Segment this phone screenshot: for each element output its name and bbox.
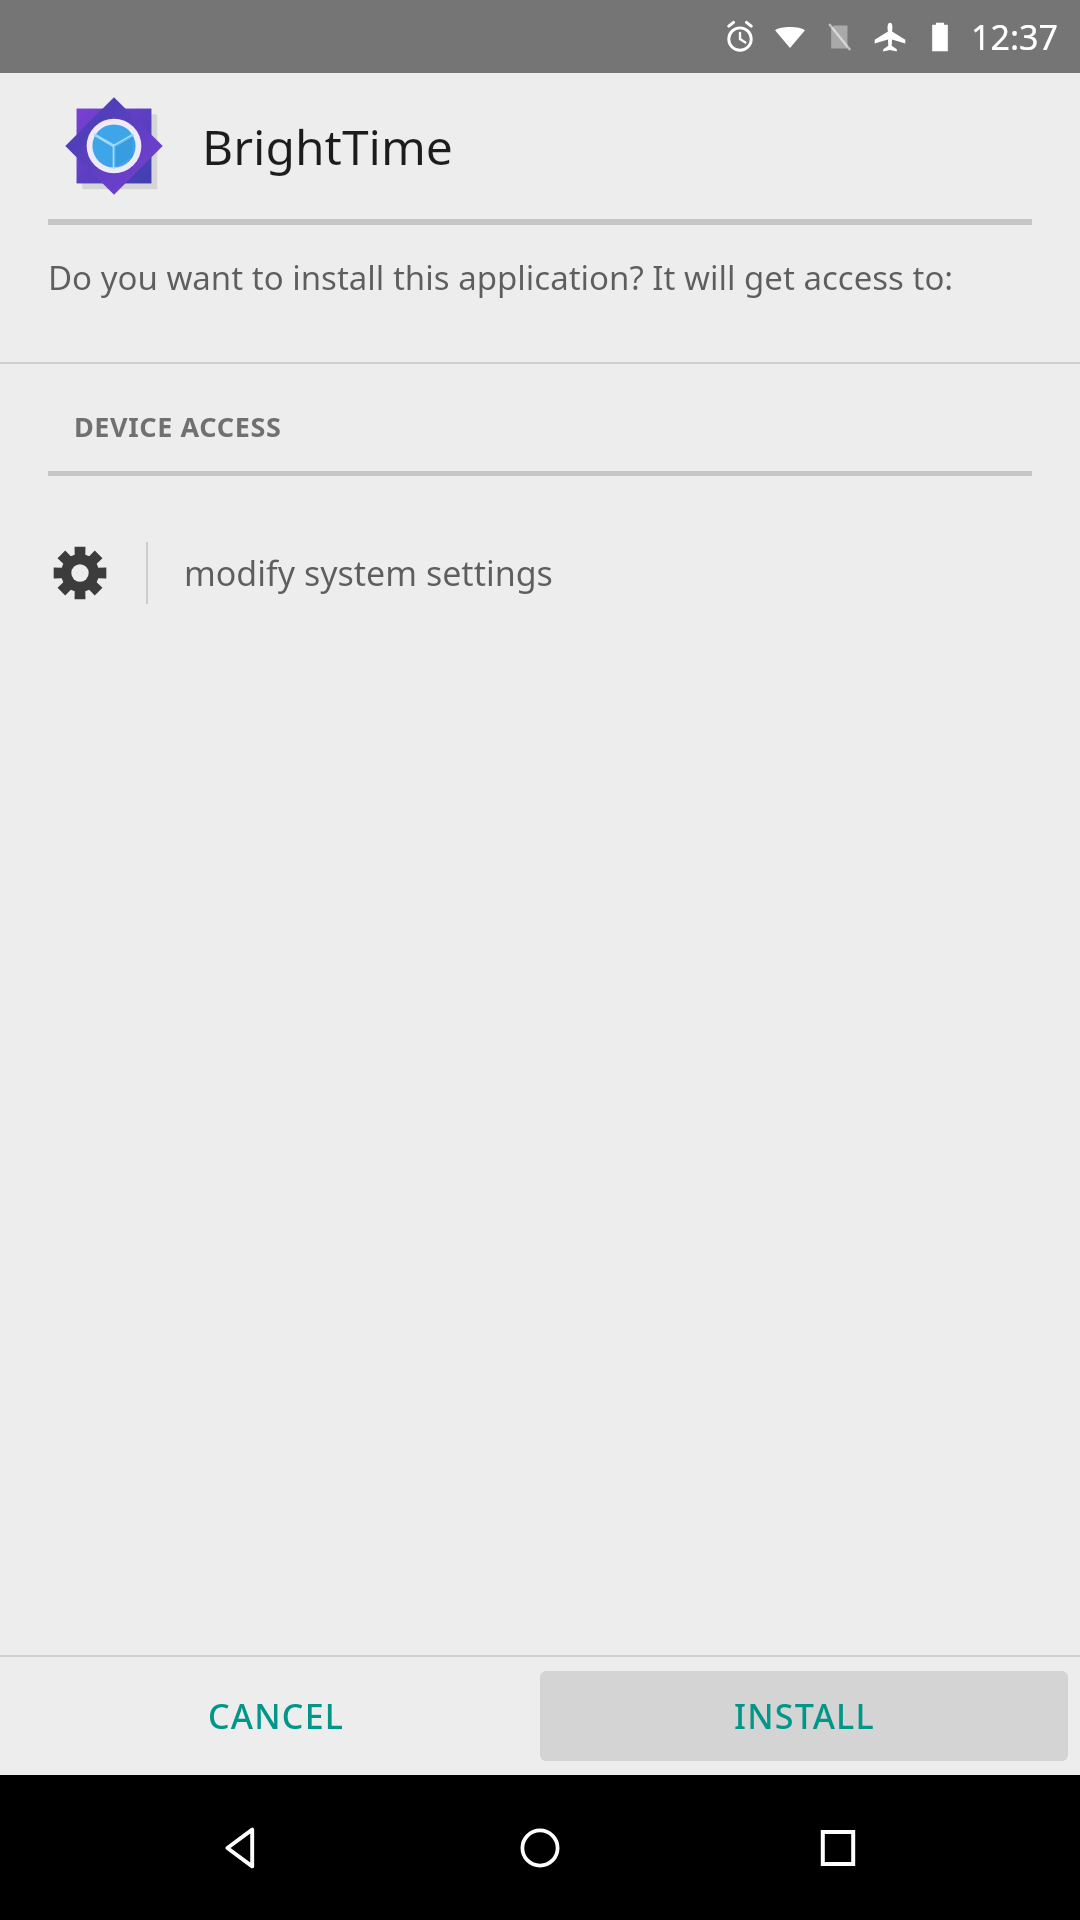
button[interactable]: Home [485,1793,595,1903]
staticText: Do you want to install this application?… [48,255,954,300]
button[interactable]: Settings permission [0,518,1080,628]
button[interactable]: INSTALL [540,1671,1068,1761]
staticText: DEVICE ACCESS [74,408,282,445]
button[interactable]: Recent apps [783,1793,893,1903]
staticText: 12:37 [971,14,1058,60]
staticText: BrightTime [202,114,453,179]
staticText: INSTALL [734,1693,875,1739]
staticText: CANCEL [208,1693,345,1739]
button[interactable]: CANCEL [12,1657,540,1775]
staticText: modify system settings [184,550,553,596]
other: Settings permission [52,545,108,601]
button[interactable]: Back [188,1793,298,1903]
